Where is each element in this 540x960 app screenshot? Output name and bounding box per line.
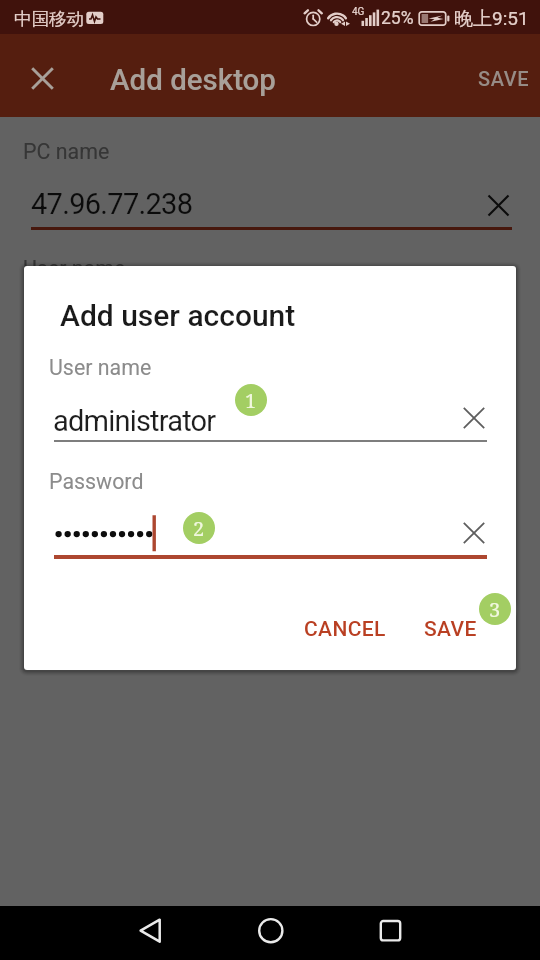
staticText: 3 [489,596,501,623]
button[interactable]: SAVE [466,55,540,102]
button[interactable]: Clear password [459,518,489,548]
staticText: 1 [245,387,257,414]
staticText: 中国移动 [14,8,84,30]
staticText: 47.96.77.238 [31,187,193,221]
staticText: 25% [381,8,414,29]
button[interactable]: SAVE [412,607,489,652]
staticText: administrator [53,404,216,438]
staticText: CANCEL [304,617,386,642]
staticText: SAVE [424,617,477,642]
staticText: SAVE [478,67,530,90]
staticText: Add desktop [110,63,276,98]
button[interactable]: CANCEL [292,607,398,652]
staticText: User name [23,256,126,281]
button[interactable]: Close [22,58,63,99]
staticText: 4G [352,6,365,18]
staticText: Add user account [60,298,296,333]
staticText: Password [49,469,144,494]
staticText: PC name [23,139,110,164]
staticText: 晚上9:51 [454,7,529,31]
staticText: 2 [193,515,205,542]
button[interactable]: Clear user name [459,403,489,433]
staticText: User name [49,355,152,380]
